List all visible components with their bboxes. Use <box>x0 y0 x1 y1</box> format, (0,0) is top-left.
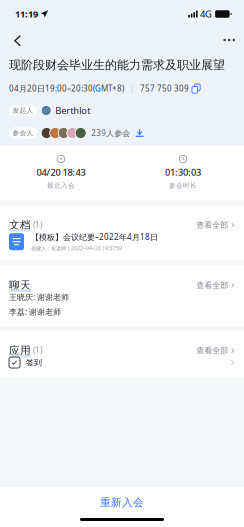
staticText: 239人参会 <box>91 128 130 138</box>
button[interactable]: 查看全部 <box>196 220 235 232</box>
staticText: 创建人：祝老师 | 2022–04–20 19:37:59 <box>31 245 122 252</box>
staticText: 聊天 <box>9 279 31 292</box>
staticText: 签到 <box>26 358 42 367</box>
button[interactable]: 返回 <box>0 29 35 51</box>
staticText: 王晓庆: 谢谢老师 <box>9 292 69 302</box>
staticText: 01:30:03 <box>165 166 201 178</box>
staticText: 现阶段财会毕业生的能力需求及职业展望 <box>9 58 225 72</box>
staticText: 04月20日19:00–20:30(GMT+8) <box>9 83 124 94</box>
staticText: 11:19 <box>15 8 38 20</box>
staticText: 最近入会 <box>47 181 75 190</box>
staticText: Berthlot <box>55 104 90 117</box>
staticText: 参会人 <box>13 129 34 137</box>
button[interactable]: 查看全部 <box>196 346 235 357</box>
staticText: 查看全部 <box>196 220 228 230</box>
staticText: 发起人 <box>13 106 34 115</box>
staticText: 应用 <box>9 344 31 357</box>
staticText: 查看全部 <box>196 346 228 355</box>
staticText: (1) <box>33 219 42 230</box>
button[interactable]: 签到 <box>0 357 244 377</box>
staticText: 文档 <box>9 218 31 232</box>
staticText: | <box>124 83 140 94</box>
staticText: 【模板】会议纪要–2022年4月18日 <box>31 232 158 242</box>
button[interactable]: 查看全部 <box>196 280 235 292</box>
staticText: 757 750 309 <box>140 83 189 94</box>
staticText: 查看全部 <box>196 280 228 290</box>
staticText: 参会时长 <box>169 181 197 190</box>
button[interactable]: 【模板】会议纪要–2022年4月18日 <box>0 232 244 261</box>
button[interactable]: 重新入会 <box>0 487 244 518</box>
button[interactable]: 下载参会名单 <box>134 126 144 139</box>
staticText: (1) <box>33 345 42 355</box>
staticText: 4G <box>200 8 212 20</box>
staticText: 重新入会 <box>100 496 144 509</box>
staticText: 04/20 18:43 <box>36 166 85 178</box>
button[interactable]: 复制会议号 <box>189 82 200 95</box>
button[interactable]: 更多 <box>211 28 244 52</box>
staticText: 李荔: 谢谢老师 <box>9 306 61 317</box>
